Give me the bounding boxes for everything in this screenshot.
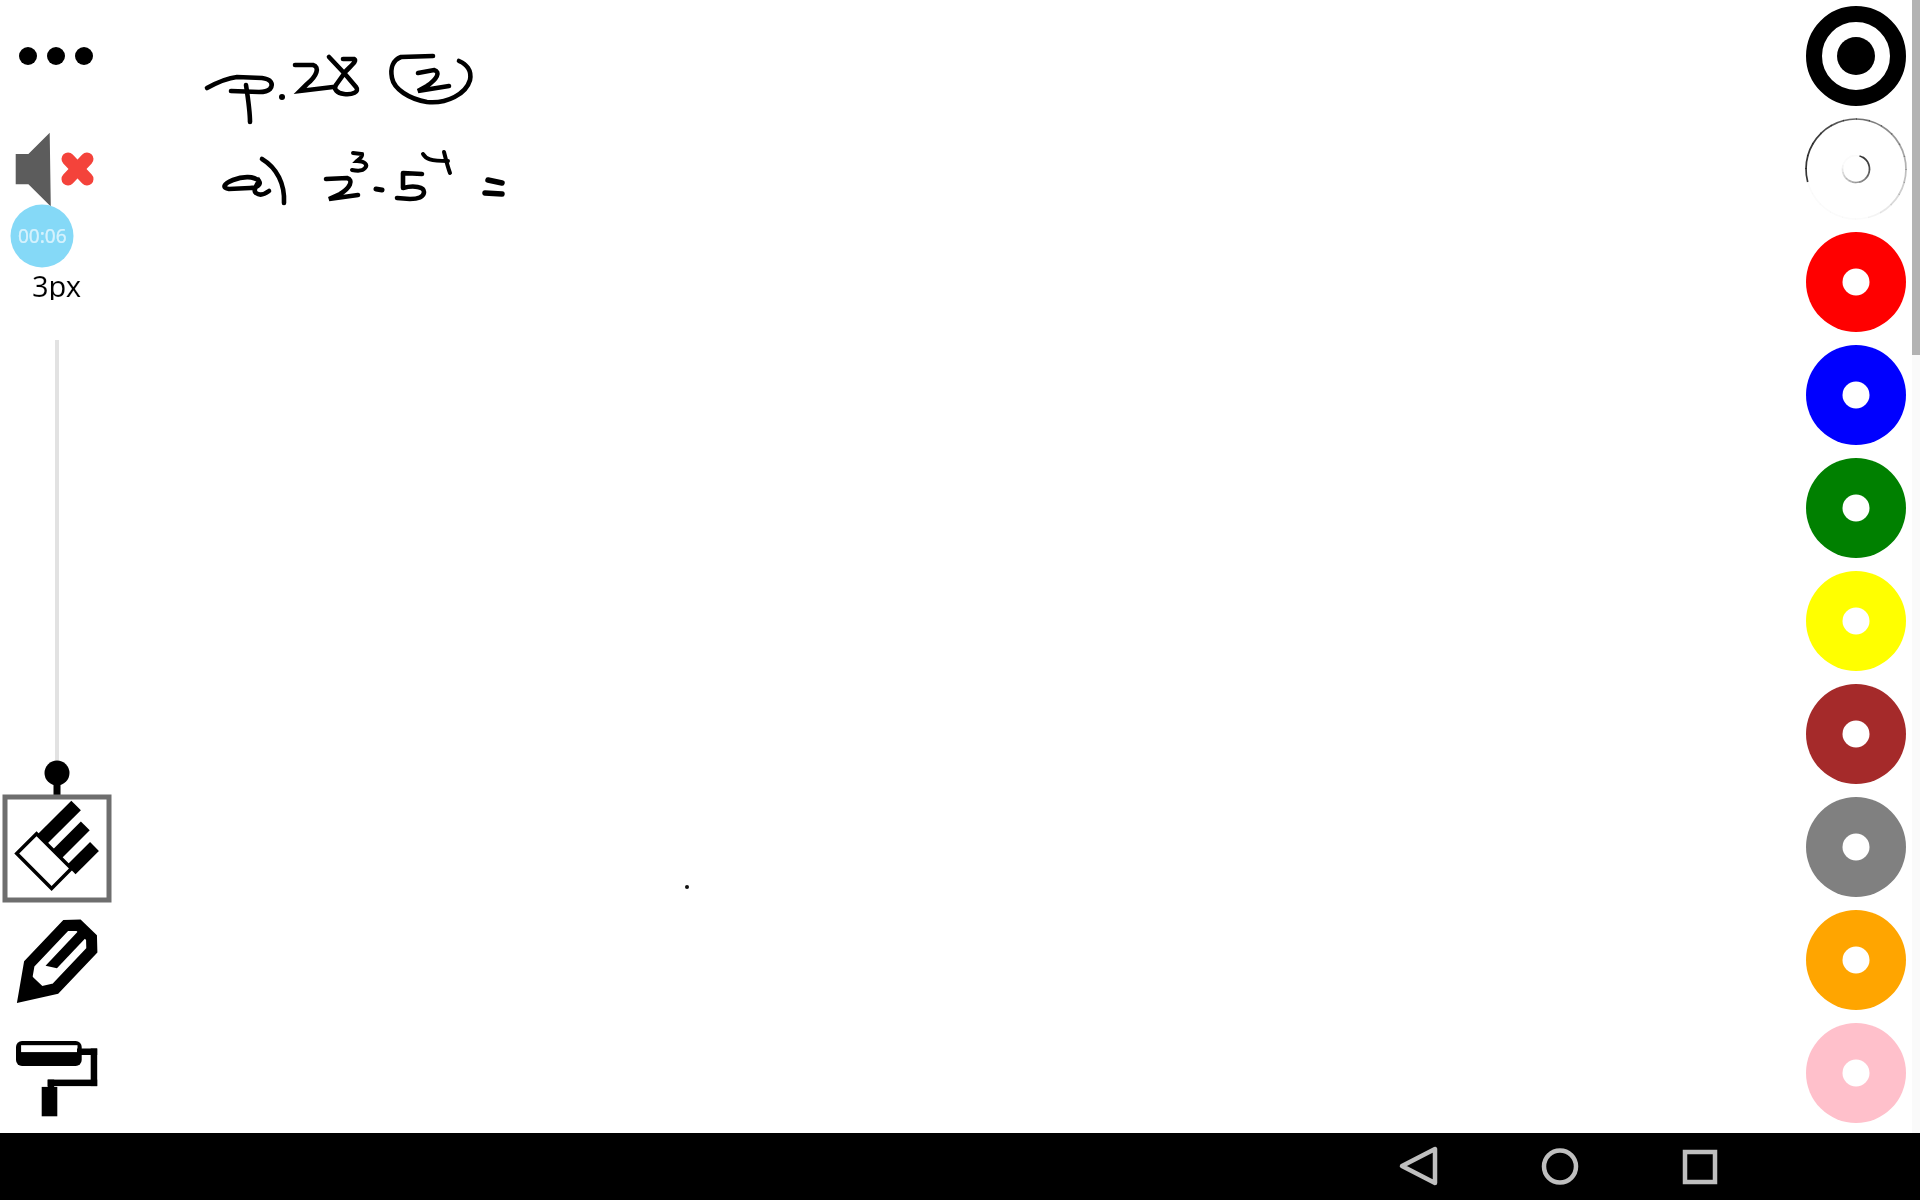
staticText: 3px <box>32 266 82 300</box>
button[interactable]: Stroke thickness <box>30 330 84 795</box>
button[interactable]: Colour 8 <box>1804 908 1908 1012</box>
staticText: 00:06 <box>18 223 67 249</box>
button[interactable]: Mute audio <box>8 128 104 208</box>
button[interactable]: Colour 1 <box>1804 117 1908 221</box>
button[interactable]: Home <box>1527 1133 1593 1200</box>
button[interactable]: Colour 3 <box>1804 343 1908 447</box>
button[interactable]: Back <box>1385 1133 1451 1200</box>
button[interactable]: Colour 5 <box>1804 569 1908 673</box>
button[interactable]: Colour 0 <box>1804 4 1908 108</box>
button[interactable]: Fill <box>8 1028 108 1128</box>
button[interactable]: Colour 4 <box>1804 456 1908 560</box>
button[interactable]: Colour 9 <box>1804 1021 1908 1125</box>
button[interactable]: Colour 2 <box>1804 230 1908 334</box>
button[interactable]: Eraser <box>3 795 111 902</box>
button[interactable]: Colour 7 <box>1804 795 1908 899</box>
button[interactable]: Recording timer <box>10 204 74 268</box>
button[interactable]: Colour 6 <box>1804 682 1908 786</box>
button[interactable]: More options <box>4 32 108 80</box>
button[interactable]: Recents <box>1667 1133 1733 1200</box>
button[interactable]: Pen <box>6 918 106 1018</box>
